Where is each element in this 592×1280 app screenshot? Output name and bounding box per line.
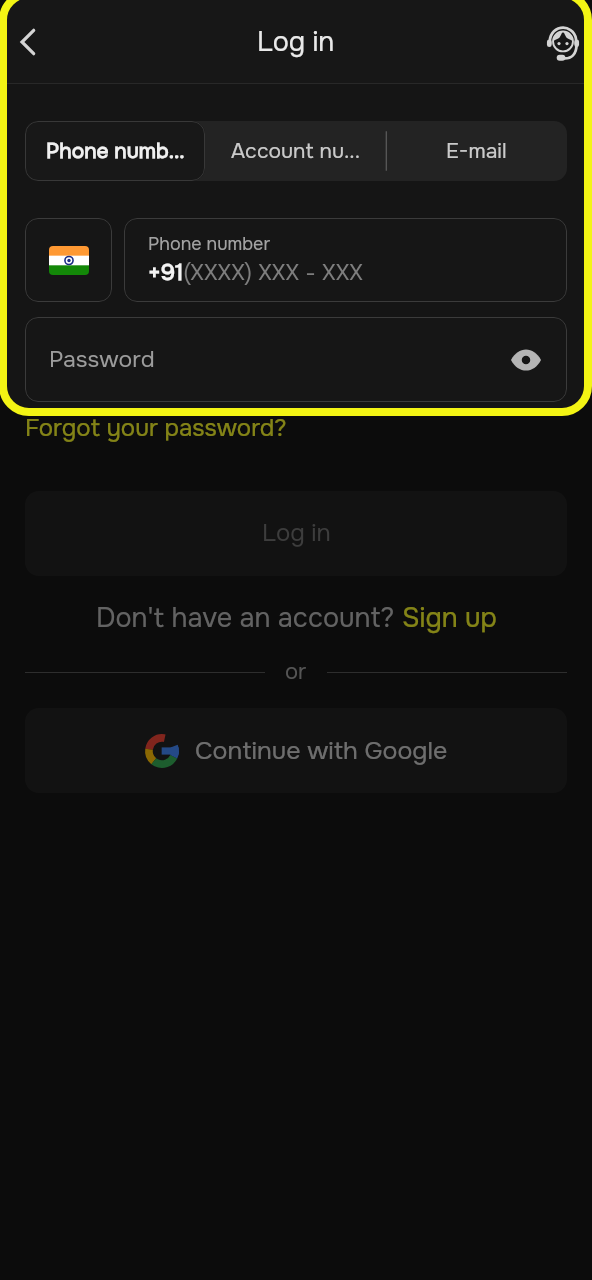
staticText: Don't have an account? <box>96 601 402 635</box>
button[interactable]: Password <box>25 317 567 402</box>
button[interactable]: Continue with Google <box>25 708 567 793</box>
button[interactable]: Show password <box>503 337 549 383</box>
staticText: +91(XXXX) XXX - XXX <box>148 258 363 287</box>
button[interactable]: Customer support <box>540 19 586 65</box>
button[interactable]: E-mail <box>386 121 567 181</box>
staticText: Phone numb... <box>46 138 185 165</box>
staticText: Sign up <box>402 601 497 635</box>
staticText: or <box>285 658 307 686</box>
staticText: Log in <box>262 518 331 549</box>
staticText: Phone number <box>148 233 271 256</box>
staticText: Account nu... <box>231 138 361 165</box>
staticText: Password <box>49 345 155 374</box>
staticText: E-mail <box>446 138 507 165</box>
button[interactable]: Forgot your password? <box>25 413 287 444</box>
staticText: Forgot your password? <box>25 413 287 444</box>
button[interactable]: Back <box>4 18 52 66</box>
button[interactable]: Phone numb... <box>25 121 205 181</box>
button[interactable]: Account nu... <box>205 121 386 181</box>
button[interactable]: Select country, India <box>25 218 112 302</box>
button[interactable]: Phone number <box>124 218 567 302</box>
staticText: Log in <box>257 25 335 59</box>
button[interactable]: Sign up <box>402 601 497 635</box>
staticText: Continue with Google <box>195 735 448 767</box>
button[interactable]: Log in <box>25 491 567 576</box>
